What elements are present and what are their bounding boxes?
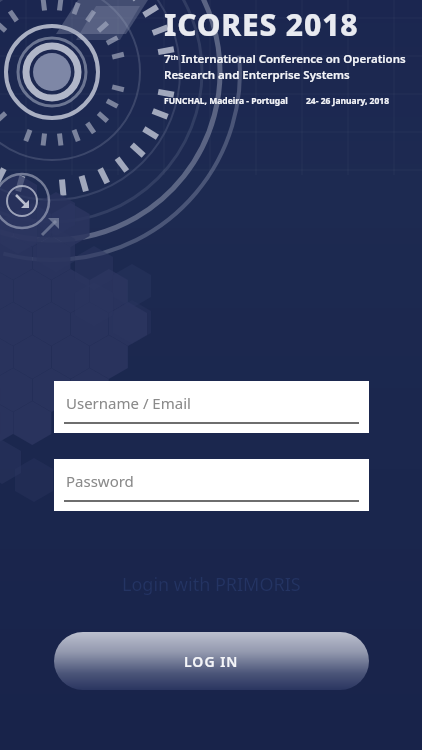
button[interactable]: LOG IN — [54, 632, 369, 690]
button[interactable]: Login with PRIMORIS — [0, 572, 422, 597]
staticText: Login with PRIMORIS — [122, 572, 301, 597]
button[interactable]: Password — [54, 459, 369, 511]
staticText: 7ᵗʰ International Conference on Operatio… — [164, 51, 406, 67]
staticText: Username / Email — [66, 393, 191, 413]
staticText: Research and Enterprise Systems — [164, 67, 350, 83]
staticText: LOG IN — [184, 652, 239, 671]
staticText: FUNCHAL, Madeira - Portugal — [164, 95, 288, 107]
staticText: Password — [66, 471, 134, 491]
staticText: 24- 26 January, 2018 — [306, 95, 390, 107]
button[interactable]: Username / Email — [54, 381, 369, 433]
staticText: ICORES 2018 — [164, 4, 359, 45]
